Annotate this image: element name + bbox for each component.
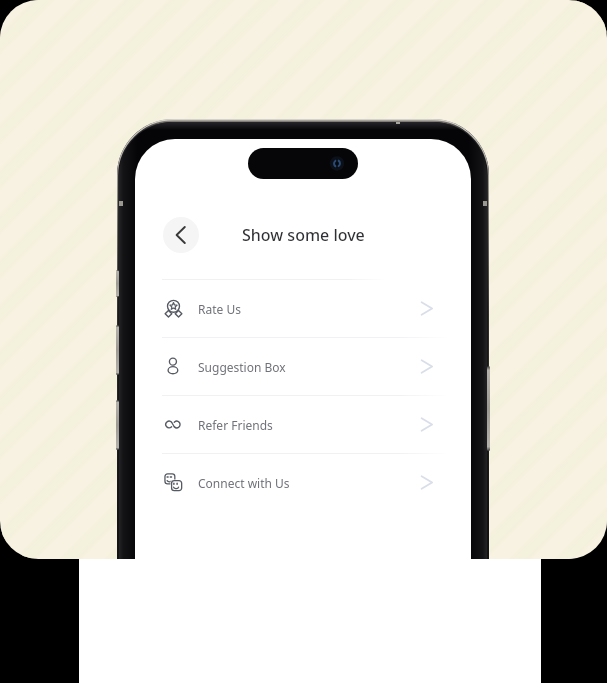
staticText: Show some love: [242, 224, 365, 246]
button[interactable]: Suggestion Box: [162, 338, 450, 395]
staticText: Suggestion Box: [198, 359, 286, 375]
button[interactable]: Refer Friends: [162, 396, 450, 453]
button[interactable]: Rate Us: [162, 280, 450, 337]
button[interactable]: Back: [163, 217, 199, 253]
button[interactable]: Connect with Us: [162, 454, 450, 511]
staticText: Refer Friends: [198, 417, 273, 433]
staticText: Connect with Us: [198, 475, 290, 491]
staticText: Rate Us: [198, 301, 241, 317]
